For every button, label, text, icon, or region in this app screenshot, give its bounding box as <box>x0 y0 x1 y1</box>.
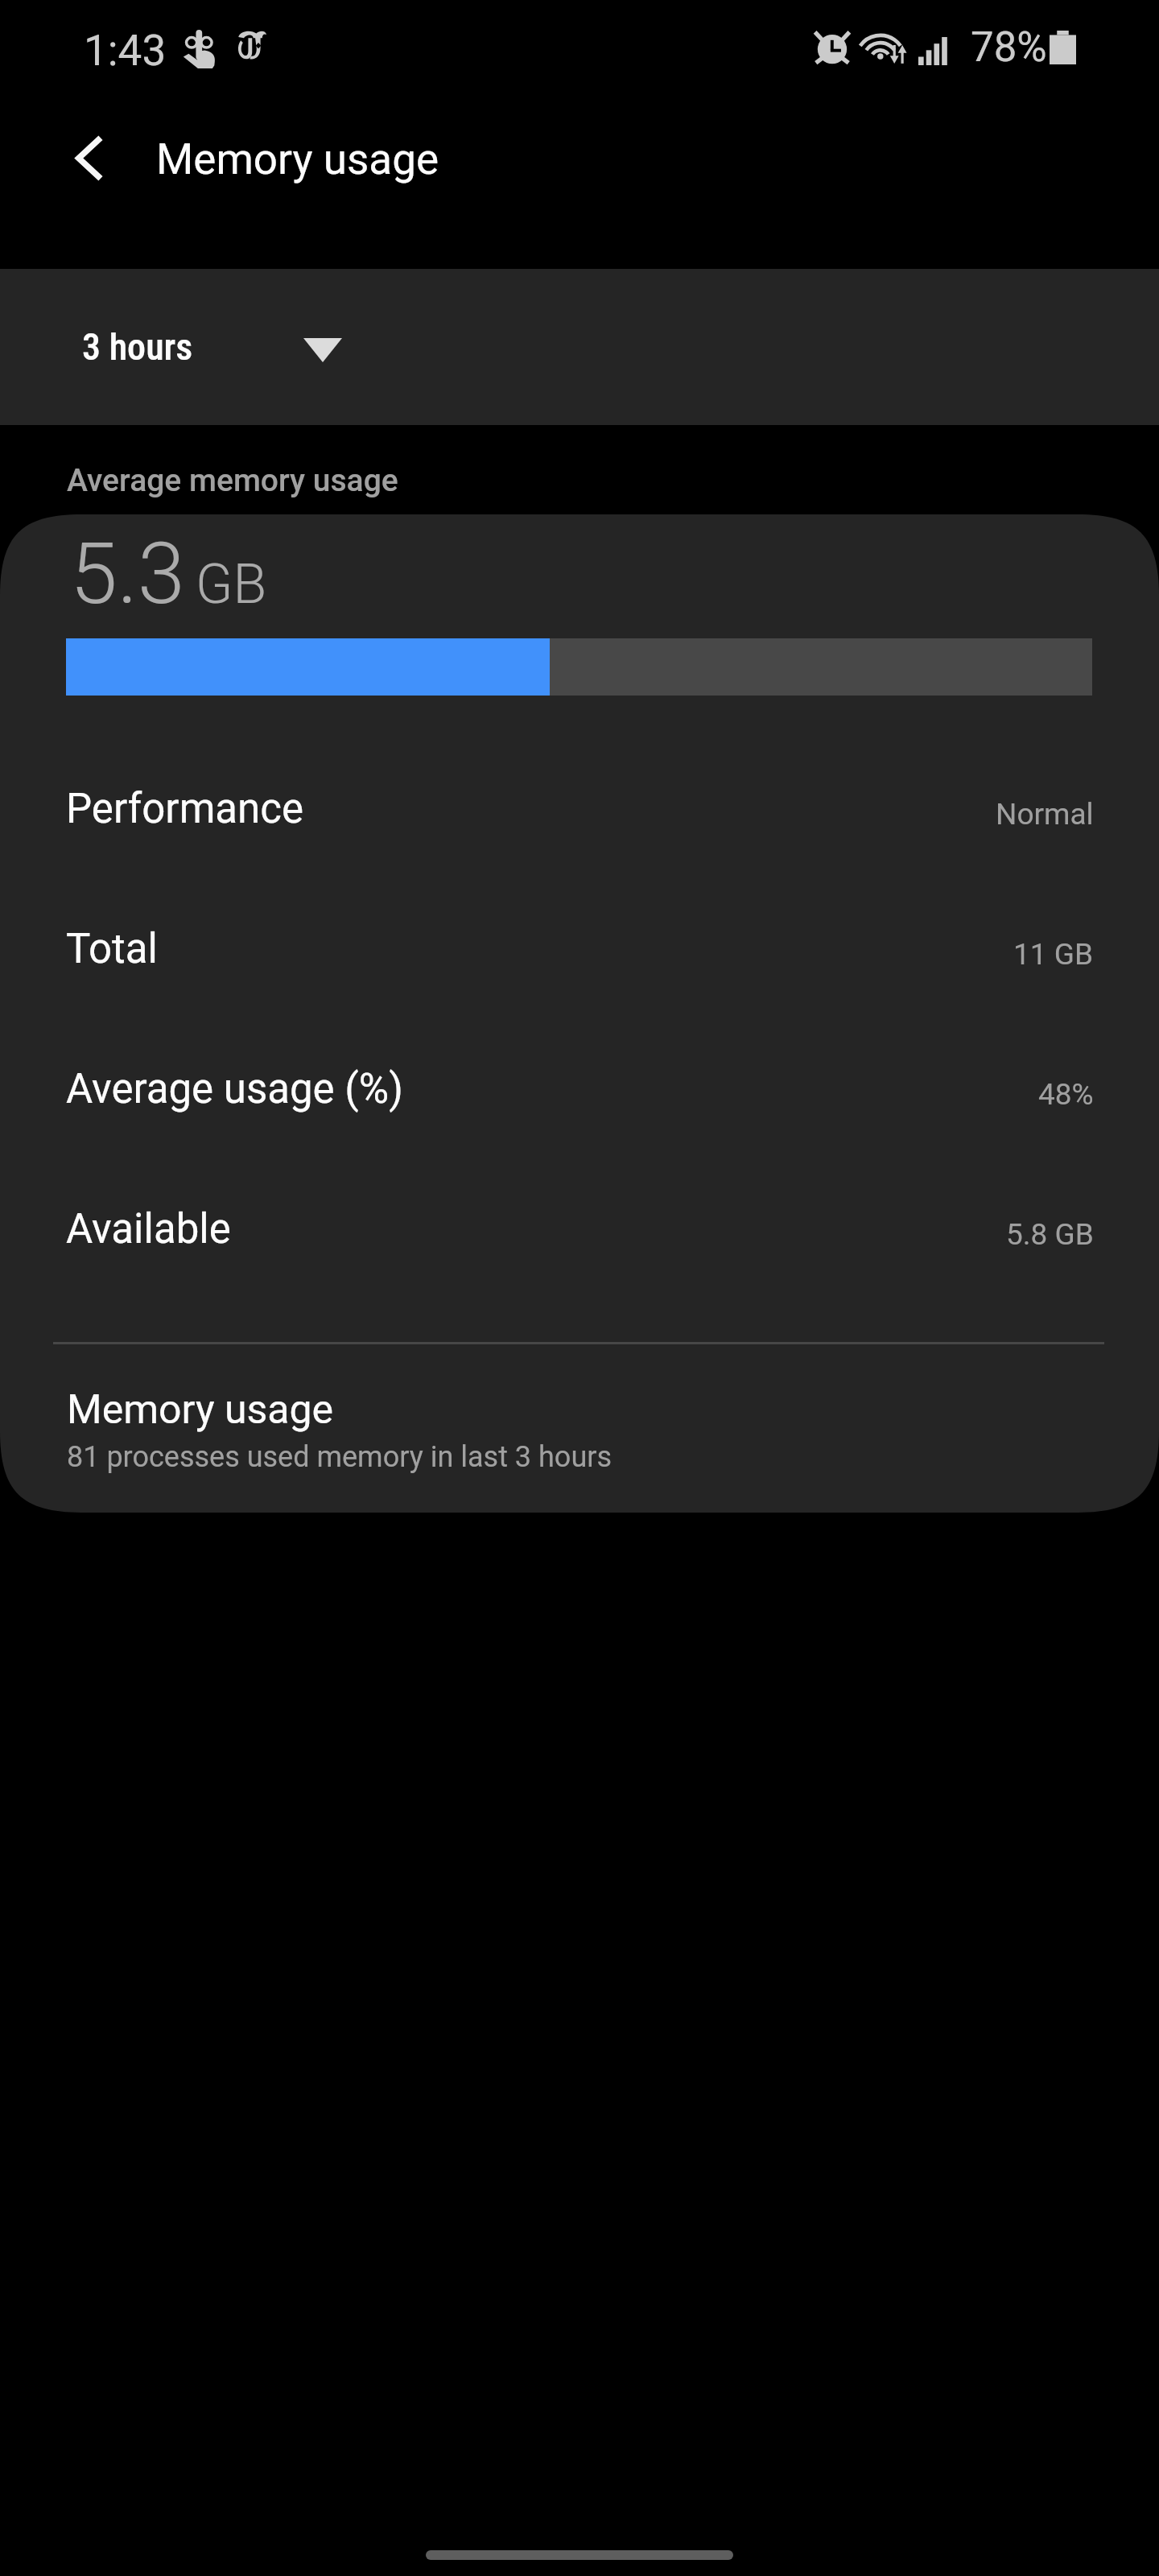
staticText: Memory usage <box>156 134 439 184</box>
staticText: Available <box>66 1205 231 1253</box>
button[interactable]: Average usage (%) <box>0 1033 1159 1172</box>
button[interactable]: Available <box>0 1173 1159 1312</box>
staticText: Total <box>66 925 158 973</box>
button[interactable]: Memory usage <box>0 1368 1159 1513</box>
staticText: Average usage (%) <box>66 1065 403 1113</box>
staticText: 11 GB <box>1013 937 1094 972</box>
staticText: Average memory usage <box>67 462 398 499</box>
button[interactable]: 3 hours <box>0 269 1159 425</box>
staticText: 48% <box>1038 1077 1094 1112</box>
staticText: Normal <box>996 797 1094 832</box>
staticText: 5.3 <box>70 524 185 624</box>
staticText: 1:43 <box>84 26 167 76</box>
button[interactable]: Performance <box>0 753 1159 892</box>
staticText: 81 processes used memory in last 3 hours <box>67 1440 612 1474</box>
staticText: GB <box>196 552 267 617</box>
staticText: Performance <box>66 785 304 833</box>
staticText: 3 hours <box>82 325 193 369</box>
button[interactable]: Navigate up <box>35 105 141 211</box>
staticText: Memory usage <box>67 1386 334 1434</box>
staticText: 5.8 GB <box>1006 1217 1094 1252</box>
staticText: 78% <box>971 23 1047 72</box>
button[interactable]: Total <box>0 893 1159 1032</box>
